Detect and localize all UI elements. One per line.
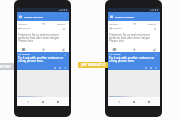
button[interactable]: Save translation — [54, 67, 56, 69]
other: Voice input — [133, 48, 136, 51]
staticText: German — [109, 22, 119, 25]
button[interactable]: Recent apps — [145, 98, 153, 106]
button[interactable]: Listen to source text — [18, 27, 21, 30]
other: Camera input — [22, 48, 25, 51]
button[interactable]: Camera input — [111, 46, 117, 52]
staticText: Try it out with another sentence or a lo… — [18, 56, 64, 63]
button[interactable]: Camera input — [20, 46, 26, 52]
staticText: English — [148, 22, 157, 25]
button[interactable]: Listen to source text — [109, 27, 112, 30]
button[interactable]: Recent apps — [54, 98, 62, 106]
staticText: English — [113, 53, 121, 56]
button[interactable]: Swap languages — [42, 22, 45, 25]
staticText: Probieren Sie es mal mit einem anderen S… — [18, 33, 61, 43]
button[interactable]: Share translation — [64, 67, 66, 69]
button[interactable]: Back — [115, 98, 123, 106]
button[interactable]: Swap languages — [133, 22, 136, 25]
button[interactable]: Share translation — [155, 67, 157, 69]
button[interactable]: TYPE TEXT — [0, 63, 14, 70]
button[interactable]: Expand translation — [64, 54, 66, 56]
staticText: TYPE TEXT — [0, 65, 12, 69]
button[interactable]: Copy translation — [150, 67, 152, 69]
staticText: Deutsch — [22, 27, 31, 30]
button[interactable]: Home — [39, 98, 47, 106]
staticText: German — [18, 22, 28, 25]
staticText: English — [57, 22, 66, 25]
staticText: English — [22, 53, 30, 56]
other: Handwriting input — [62, 48, 65, 51]
button[interactable]: Voice input — [40, 46, 46, 52]
button[interactable]: Listen to translation — [18, 53, 21, 56]
other: Recent apps — [148, 101, 150, 103]
button[interactable]: Home — [130, 98, 138, 106]
other: Camera input — [113, 48, 116, 51]
button[interactable]: Save translation — [145, 67, 147, 69]
button[interactable]: Open navigation menu — [108, 12, 160, 21]
button[interactable]: Open navigation menu — [17, 12, 69, 21]
button[interactable]: JUST TRANSLATE IT — [78, 62, 108, 68]
button[interactable]: Expand translation — [155, 54, 157, 56]
other: Open navigation menu — [19, 15, 22, 18]
button[interactable]: Back — [24, 98, 32, 106]
button[interactable]: Voice input — [131, 46, 137, 52]
button[interactable]: Handwriting input — [60, 46, 66, 52]
other: Back — [118, 101, 120, 103]
other: Handwriting input — [153, 48, 156, 51]
button[interactable]: English — [148, 21, 160, 26]
staticText: Probieren Sie es mal mit einem anderen S… — [109, 33, 152, 43]
button[interactable]: German — [18, 21, 31, 26]
staticText: Google Translate — [115, 15, 134, 18]
button[interactable]: German — [109, 21, 122, 26]
staticText: Google Translate — [24, 15, 43, 18]
staticText: Deutsch — [113, 27, 122, 30]
staticText: JUST TRANSLATE IT — [81, 63, 106, 67]
staticText: Try it out with another sentence or a lo… — [109, 56, 155, 63]
other: Open navigation menu — [110, 15, 113, 18]
other: Recent apps — [57, 101, 59, 103]
button[interactable]: Handwriting input — [151, 46, 157, 52]
button[interactable]: Listen to translation — [109, 53, 112, 56]
button[interactable]: English — [57, 21, 69, 26]
button[interactable]: Copy translation — [59, 67, 61, 69]
other: Back — [27, 101, 29, 103]
other: Voice input — [42, 48, 45, 51]
